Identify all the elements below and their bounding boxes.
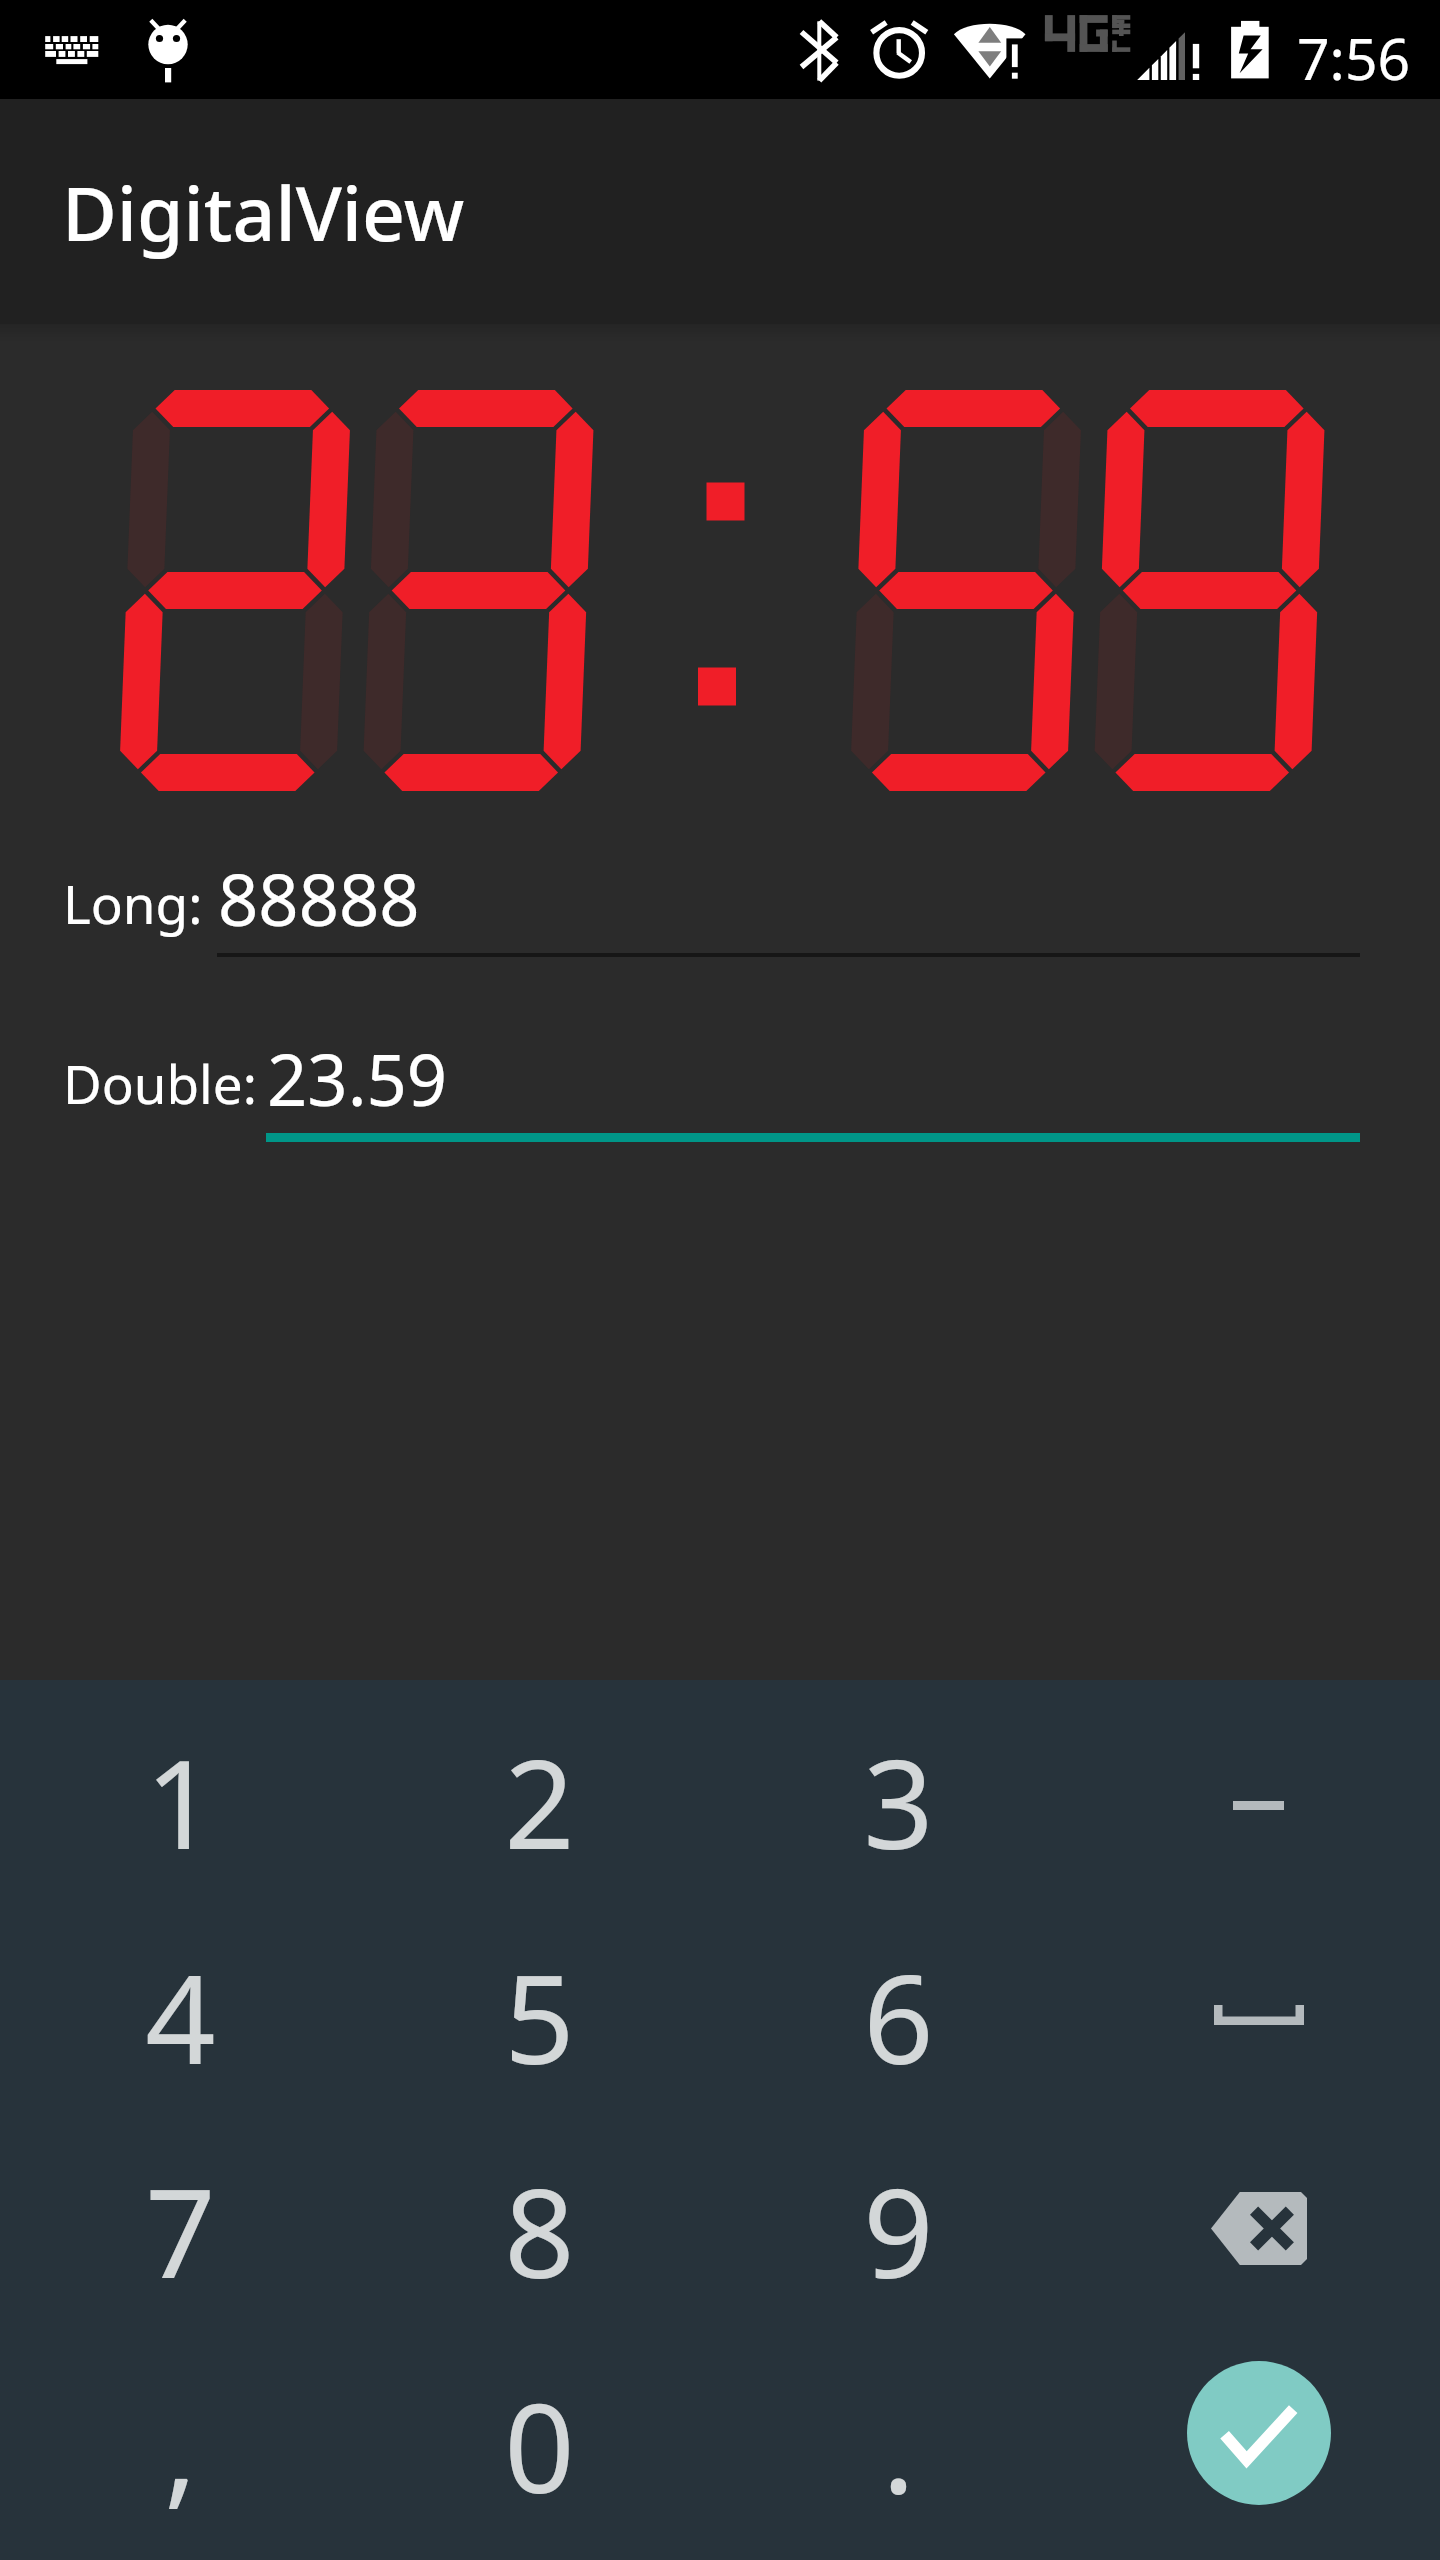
button[interactable]: 4 xyxy=(1,1909,360,2124)
button[interactable]: 88888 xyxy=(217,841,1360,965)
button[interactable]: Delete xyxy=(1079,2121,1438,2336)
button[interactable]: 3 xyxy=(719,1694,1078,1909)
staticText: 4 xyxy=(145,1933,216,2101)
button[interactable]: 1 xyxy=(1,1694,360,1909)
button[interactable]: 6 xyxy=(719,1909,1078,2124)
button[interactable]: 8 xyxy=(360,2123,719,2338)
staticText: 6 xyxy=(863,1933,934,2101)
staticText: 8 xyxy=(504,2147,575,2315)
button[interactable]: Done xyxy=(1079,2325,1438,2540)
staticText: Long: xyxy=(63,867,203,939)
staticText: 0 xyxy=(504,2362,575,2530)
button[interactable]: 5 xyxy=(360,1909,719,2124)
staticText: 88888 xyxy=(218,851,420,947)
button[interactable]: 23.59 xyxy=(266,1021,1360,1145)
button[interactable]: Minus xyxy=(1079,1698,1438,1913)
button[interactable]: Space xyxy=(1079,1907,1438,2122)
staticText: 2 xyxy=(504,1718,575,1886)
staticText: 1 xyxy=(145,1718,216,1886)
staticText: 3 xyxy=(863,1718,934,1886)
button[interactable]: 0 xyxy=(360,2338,719,2553)
staticText: 7 xyxy=(145,2147,216,2315)
staticText: Double: xyxy=(63,1047,257,1119)
staticText: 9 xyxy=(863,2147,934,2315)
staticText: 23.59 xyxy=(267,1031,448,1127)
staticText: 5 xyxy=(504,1933,575,2101)
button[interactable]: , xyxy=(1,2338,360,2553)
staticText: DigitalView xyxy=(62,161,465,263)
button[interactable]: . xyxy=(719,2338,1078,2553)
staticText: 7:56 xyxy=(1297,19,1411,97)
staticText: , xyxy=(164,2362,197,2530)
staticText: . xyxy=(882,2362,915,2530)
button[interactable]: 7 xyxy=(1,2123,360,2338)
button[interactable]: 9 xyxy=(719,2123,1078,2338)
button[interactable]: 2 xyxy=(360,1694,719,1909)
